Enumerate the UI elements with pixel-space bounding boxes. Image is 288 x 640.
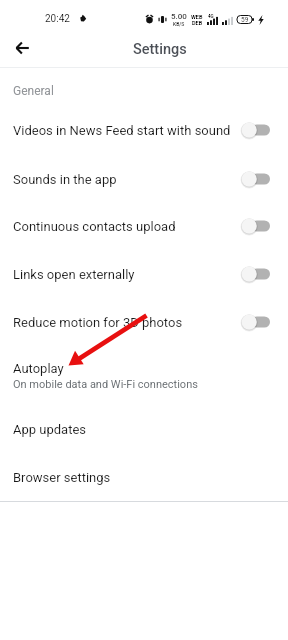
button[interactable]: Reduce motion for 3D photos <box>0 307 288 337</box>
staticText: DEB <box>192 20 203 26</box>
staticText: Sounds in the app <box>13 172 117 187</box>
button[interactable]: Sounds in the app <box>0 164 288 194</box>
staticText: WEB <box>191 14 203 20</box>
staticText: 4G <box>208 14 214 19</box>
staticText: Reduce motion for 3D photos <box>13 315 183 330</box>
staticText: On mobile data and Wi-Fi connections <box>13 378 198 391</box>
staticText: Links open externally <box>13 267 135 282</box>
button[interactable]: Videos in News Feed start with sound <box>0 115 288 145</box>
button[interactable]: App updates <box>0 414 288 444</box>
staticText: Settings <box>133 41 187 58</box>
staticText: 5.00 <box>171 12 187 21</box>
staticText: General <box>13 84 54 98</box>
staticText: App updates <box>13 422 87 437</box>
staticText: 59 <box>241 16 249 24</box>
staticText: Continuous contacts upload <box>13 219 176 234</box>
button[interactable]: Continuous contacts upload <box>0 211 288 241</box>
button[interactable]: Links open externally <box>0 259 288 289</box>
staticText: 20:42 <box>45 13 70 25</box>
staticText: KB/S <box>173 21 185 27</box>
staticText: Videos in News Feed start with sound <box>13 123 231 138</box>
button[interactable]: Browser settings <box>0 462 288 492</box>
staticText: Browser settings <box>13 470 111 485</box>
staticText: Autoplay <box>13 361 64 376</box>
button[interactable]: Back <box>7 33 36 62</box>
button[interactable]: Autoplay <box>0 356 288 396</box>
